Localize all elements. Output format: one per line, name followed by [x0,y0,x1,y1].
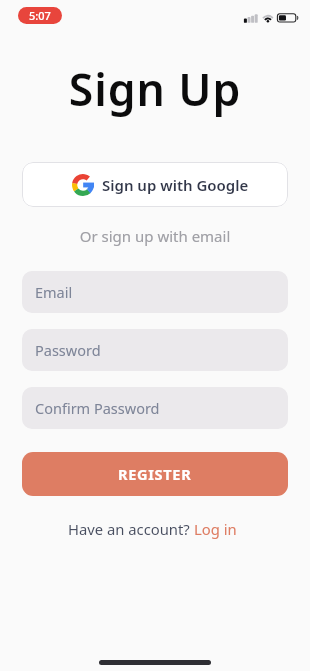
staticText: Sign up with Google [102,175,249,195]
button[interactable]: Log in [194,519,237,539]
button[interactable]: Email [22,271,288,313]
button[interactable]: Confirm Password [22,387,288,429]
staticText: Password [35,340,101,360]
button[interactable]: Sign up with Google [22,162,288,207]
staticText: 5:07 [29,8,51,23]
staticText: Sign Up [0,58,310,119]
staticText: Or sign up with email [0,226,310,246]
staticText: Confirm Password [35,398,160,418]
button[interactable]: Password [22,329,288,371]
staticText: Email [35,282,73,302]
staticText: Log in [194,519,237,539]
staticText: REGISTER [118,464,192,484]
staticText: Have an account? [68,519,194,539]
button[interactable]: REGISTER [22,452,288,496]
